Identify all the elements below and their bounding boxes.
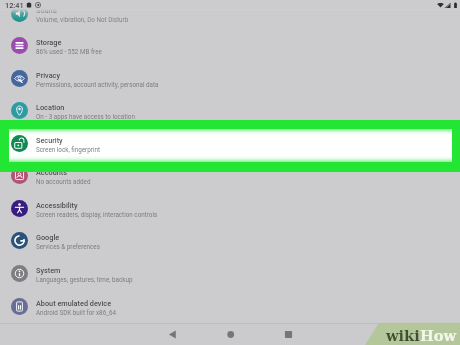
staticText: Services & preferences bbox=[36, 243, 100, 250]
button[interactable]: Sound bbox=[0, 0, 460, 31]
staticText: Google bbox=[36, 233, 60, 242]
button[interactable]: Accounts bbox=[0, 161, 460, 193]
staticText: Sound bbox=[36, 6, 57, 15]
staticText: Screen readers, display, interaction con… bbox=[36, 211, 158, 218]
button[interactable]: Back bbox=[167, 329, 178, 340]
staticText: 86% used - 552 MB free bbox=[36, 48, 102, 55]
staticText: Android SDK built for x86_64 bbox=[36, 309, 117, 316]
staticText: Screen lock, fingerprint bbox=[36, 146, 100, 153]
button[interactable]: System bbox=[0, 259, 460, 291]
button[interactable]: Storage bbox=[0, 31, 460, 63]
button[interactable]: Home bbox=[225, 329, 236, 340]
staticText: Storage bbox=[36, 38, 62, 47]
button[interactable]: Privacy bbox=[0, 64, 460, 96]
staticText: How bbox=[420, 327, 457, 344]
button[interactable] bbox=[0, 120, 460, 172]
staticText: Location bbox=[36, 103, 65, 112]
button[interactable]: Recent apps bbox=[283, 329, 294, 340]
button[interactable]: Security bbox=[0, 129, 460, 161]
button[interactable]: Google bbox=[0, 226, 460, 258]
staticText: 12:41 bbox=[5, 1, 24, 10]
staticText: Security bbox=[36, 136, 63, 145]
staticText: Privacy bbox=[36, 71, 60, 80]
staticText: No accounts added bbox=[36, 178, 91, 185]
staticText: System bbox=[36, 266, 61, 275]
button[interactable]: Accessibility bbox=[0, 194, 460, 226]
button[interactable]: Location bbox=[0, 96, 460, 128]
staticText: wiki bbox=[386, 327, 420, 344]
staticText: On - 3 apps have access to location bbox=[36, 113, 135, 120]
staticText: Volume, vibration, Do Not Disturb bbox=[36, 16, 129, 23]
staticText: Accessibility bbox=[36, 201, 78, 210]
staticText: About emulated device bbox=[36, 299, 112, 308]
staticText: Accounts bbox=[36, 168, 67, 177]
staticText: Languages, gestures, time, backup bbox=[36, 276, 133, 283]
button[interactable]: About emulated device bbox=[0, 292, 460, 324]
staticText: Permissions, account activity, personal … bbox=[36, 81, 159, 88]
